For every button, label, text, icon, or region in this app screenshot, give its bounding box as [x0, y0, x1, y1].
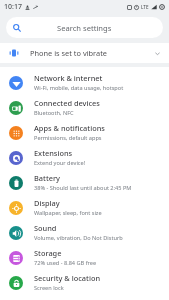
button[interactable]: Connected devices	[0, 95, 169, 120]
staticText: Connected devices	[34, 98, 100, 108]
staticText: Network & internet	[34, 73, 103, 83]
staticText: Wi-Fi, mobile, data usage, hotspot	[34, 84, 124, 92]
button[interactable]: Phone is set to vibrate	[0, 43, 169, 63]
staticText: Phone is set to vibrate	[30, 48, 107, 58]
staticText: Screen lock	[34, 284, 64, 292]
staticText: Extensions	[34, 148, 73, 158]
button[interactable]: Security & location	[0, 270, 169, 295]
staticText: 38% - Should last until about 2:45 PM	[34, 184, 132, 192]
staticText: Extend your device!	[34, 159, 86, 167]
button[interactable]: Extensions	[0, 145, 169, 170]
button[interactable]: Apps & notifications	[0, 120, 169, 145]
staticText: Wallpaper, sleep, font size	[34, 209, 102, 217]
button[interactable]: Network & internet	[0, 70, 169, 95]
staticText: 10:17	[4, 2, 22, 12]
staticText: Search settings	[57, 23, 112, 33]
button[interactable]: Sound	[0, 220, 169, 245]
staticText: 72% used - 8.84 GB free	[34, 259, 97, 267]
staticText: Security & location	[34, 273, 101, 283]
staticText: Storage	[34, 248, 62, 258]
staticText: Apps & notifications	[34, 123, 105, 133]
button[interactable]: Storage	[0, 245, 169, 270]
staticText: Sound	[34, 223, 57, 233]
staticText: Volume, vibration, Do Not Disturb	[34, 234, 123, 242]
staticText: Display	[34, 198, 60, 208]
button[interactable]: Display	[0, 195, 169, 220]
staticText: Battery	[34, 173, 60, 183]
button[interactable]: Battery	[0, 170, 169, 195]
staticText: LTE	[141, 4, 149, 10]
staticText: Bluetooth, NFC	[34, 109, 74, 117]
button[interactable]: Search settings	[6, 17, 163, 38]
staticText: Permissions, default apps	[34, 134, 102, 142]
